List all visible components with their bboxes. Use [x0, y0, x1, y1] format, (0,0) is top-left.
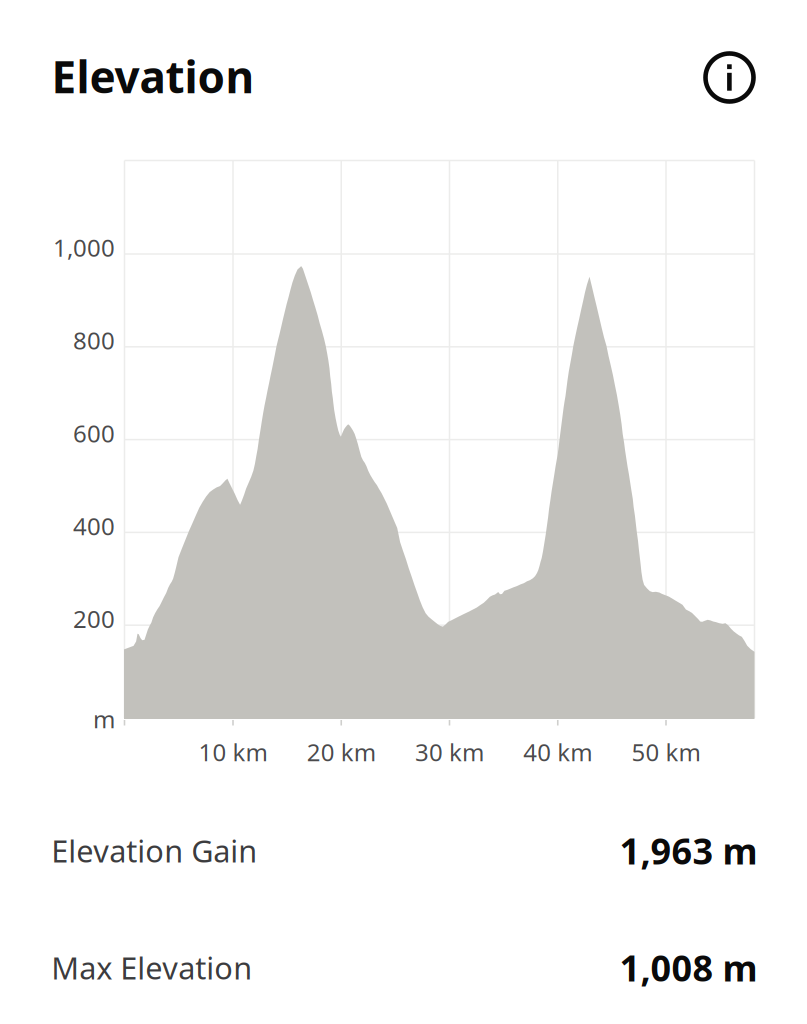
staticText: Elevation [52, 47, 255, 105]
staticText: 40 km [523, 736, 592, 768]
staticText: 10 km [198, 736, 267, 768]
staticText: 50 km [631, 736, 700, 768]
staticText: 1,000 [53, 232, 115, 263]
staticText: Max Elevation [51, 947, 252, 988]
staticText: 1,008 m [619, 944, 757, 991]
staticText: 800 [73, 324, 115, 356]
staticText: 400 [73, 510, 115, 542]
button[interactable]: About elevation [693, 41, 765, 113]
staticText: 20 km [307, 736, 376, 768]
staticText: 30 km [415, 736, 484, 768]
staticText: 1,963 m [619, 827, 757, 874]
staticText: Elevation Gain [51, 830, 257, 871]
staticText: 600 [73, 417, 115, 449]
staticText: 200 [73, 603, 115, 635]
staticText: m [93, 703, 115, 735]
